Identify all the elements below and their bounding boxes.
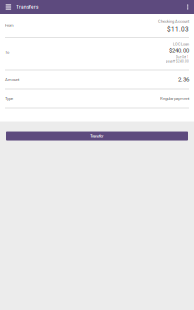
staticText: $240.00	[169, 47, 189, 54]
staticText: LOC Loan	[173, 42, 189, 46]
staticText: Due Oct 1	[176, 56, 189, 59]
staticText: payoff $240.00	[166, 60, 189, 63]
button[interactable]: Transfer	[6, 131, 188, 140]
staticText: To	[5, 50, 9, 55]
staticText: 2.36	[178, 76, 189, 83]
button[interactable]: Menu	[6, 0, 11, 14]
staticText: Transfers	[16, 4, 38, 10]
staticText: $11.03	[167, 25, 189, 33]
staticText: From	[5, 23, 14, 28]
staticText: Type	[5, 96, 13, 101]
staticText: Amount	[5, 77, 19, 82]
staticText: Regular payment	[160, 96, 189, 101]
staticText: Transfer	[90, 133, 104, 138]
staticText: Checking Account	[158, 19, 189, 24]
button[interactable]: More options	[185, 0, 190, 14]
